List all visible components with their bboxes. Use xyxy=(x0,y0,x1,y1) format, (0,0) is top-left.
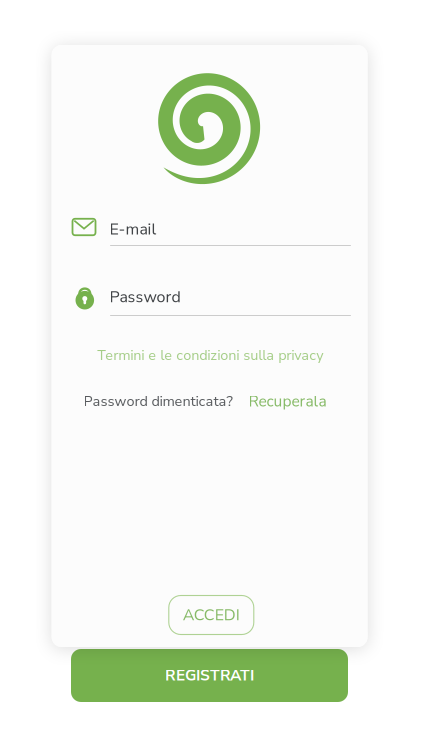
staticText: E-mail xyxy=(109,218,156,240)
staticText: Recuperala xyxy=(248,391,326,412)
staticText: REGISTRATI xyxy=(165,665,254,686)
button[interactable]: Password dimenticata? xyxy=(83,391,326,412)
button[interactable]: REGISTRATI xyxy=(71,649,348,702)
staticText: Password dimenticata? xyxy=(83,392,232,411)
staticText: Termini e le condizioni sulla privacy xyxy=(97,346,323,365)
button[interactable]: ACCEDI xyxy=(169,595,254,634)
staticText: Password xyxy=(109,286,180,308)
button[interactable]: Termini e le condizioni sulla privacy xyxy=(97,346,323,365)
staticText: ACCEDI xyxy=(183,604,240,626)
